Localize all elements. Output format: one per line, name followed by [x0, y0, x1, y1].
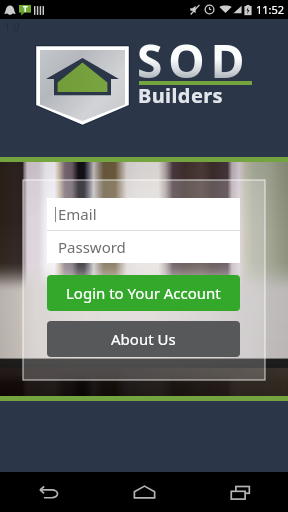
staticText: Builders — [138, 82, 223, 109]
button[interactable]: About Us — [47, 321, 240, 357]
staticText: Password — [58, 237, 126, 257]
button[interactable]: Back — [0, 472, 96, 512]
staticText: SOD — [137, 29, 251, 92]
staticText: Login to Your Account — [66, 283, 221, 303]
button[interactable]: Login to Your Account — [47, 275, 240, 311]
button[interactable]: Home — [96, 472, 192, 512]
staticText: About Us — [111, 329, 176, 349]
staticText: 1.0 — [4, 19, 20, 34]
staticText: T — [23, 3, 28, 14]
staticText: Email — [58, 204, 97, 224]
staticText: 11:52 — [256, 2, 285, 17]
button[interactable]: Recent apps — [192, 472, 288, 512]
